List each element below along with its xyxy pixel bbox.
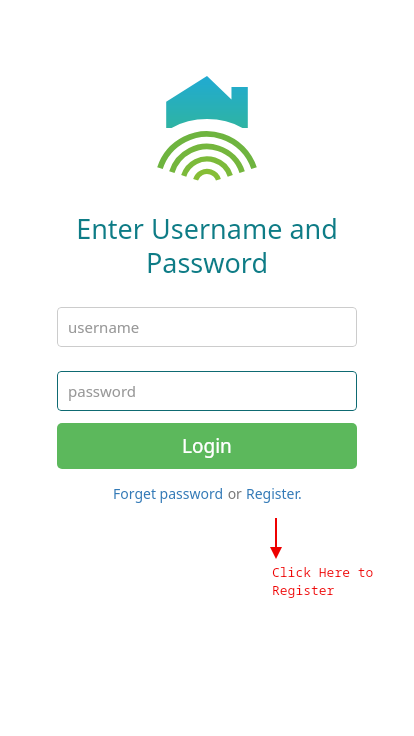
staticText: Register. [246, 484, 302, 503]
staticText: password [68, 381, 136, 401]
staticText: Login [182, 433, 232, 459]
button[interactable]: Register. [246, 484, 302, 503]
staticText: Click Here to [272, 563, 374, 581]
button[interactable]: password [57, 371, 357, 411]
staticText: or [224, 484, 246, 503]
staticText: username [68, 317, 140, 337]
button[interactable]: username [57, 307, 357, 347]
other: Annotation arrow pointing to Register [0, 0, 414, 736]
button[interactable]: Login [57, 423, 357, 469]
staticText: Forget password [113, 484, 224, 503]
staticText: Register [272, 581, 335, 599]
staticText: Enter Username and Password [40, 210, 374, 281]
button[interactable]: Forget password [113, 484, 224, 503]
